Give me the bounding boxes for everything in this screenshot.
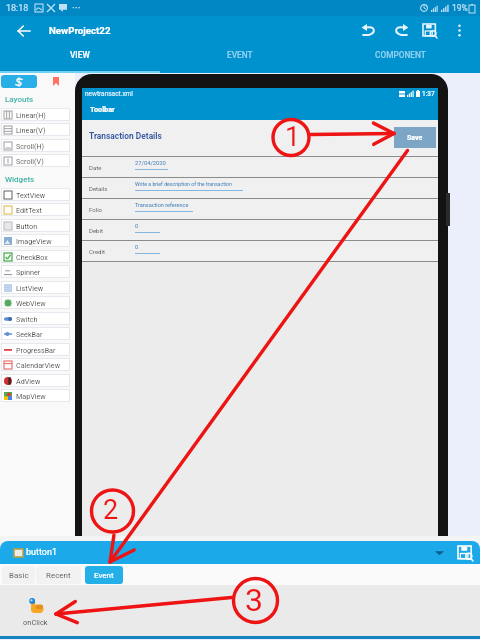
button[interactable]: Save	[414, 16, 446, 45]
button[interactable]: onClick	[15, 598, 56, 627]
staticText: Credit	[89, 248, 105, 255]
button[interactable]: Recent	[36, 566, 81, 584]
button[interactable]: Event	[85, 566, 123, 584]
button[interactable]: Button	[1, 219, 70, 232]
button[interactable]: Redo	[385, 16, 417, 45]
staticText: ListView	[16, 284, 44, 292]
staticText: NewProject22	[49, 25, 111, 36]
button[interactable]: SeekBar	[1, 327, 70, 340]
staticText: Scroll(H)	[16, 142, 45, 150]
button[interactable]: EditText	[1, 203, 70, 216]
staticText: Widgets	[5, 175, 35, 184]
button[interactable]: Save	[394, 127, 436, 148]
button[interactable]: Save project	[455, 543, 475, 563]
button[interactable]: button1	[0, 541, 480, 564]
button[interactable]: COMPONENT	[320, 45, 480, 73]
staticText: Save	[407, 134, 423, 142]
button[interactable]: CalendarView	[1, 358, 70, 371]
button[interactable]: ListView	[1, 281, 70, 294]
button[interactable]: Basic	[2, 566, 35, 584]
button[interactable]: Views palette	[1, 75, 37, 88]
button[interactable]: VIEW	[0, 45, 160, 73]
staticText: AdView	[16, 377, 41, 385]
staticText: EVENT	[227, 50, 253, 60]
button[interactable]: Scroll(H)	[1, 139, 70, 152]
staticText: Basic	[9, 571, 29, 580]
staticText: SeekBar	[16, 330, 43, 338]
staticText: Scroll(V)	[16, 157, 44, 165]
button[interactable]: Back	[7, 16, 40, 45]
staticText: 0	[135, 223, 139, 230]
staticText: ···	[72, 2, 81, 15]
staticText: 1	[285, 121, 301, 153]
staticText: Transaction Details	[89, 131, 162, 141]
staticText: Button	[16, 222, 38, 230]
button[interactable]: Spinner	[1, 265, 70, 278]
button[interactable]: MapView	[1, 389, 70, 402]
staticText: TextView	[16, 191, 46, 199]
button[interactable]: Components palette	[38, 75, 74, 88]
staticText: ProgressBar	[16, 346, 56, 354]
button[interactable]: Linear(V)	[1, 123, 70, 136]
staticText: Details	[89, 185, 108, 192]
staticText: EditText	[16, 206, 42, 214]
button[interactable]: ProgressBar	[1, 343, 70, 356]
button[interactable]: TextView	[1, 188, 70, 201]
button[interactable]: EVENT	[160, 45, 320, 73]
staticText: Linear(H)	[16, 111, 46, 119]
staticText: Write a brief description of the transac…	[135, 181, 232, 187]
staticText: newtransact.xml	[85, 90, 133, 98]
staticText: MapView	[16, 392, 46, 400]
button[interactable]: Linear(H)	[1, 108, 70, 121]
staticText: Layouts	[5, 95, 34, 104]
staticText: onClick	[23, 618, 48, 627]
button[interactable]: More options	[446, 17, 473, 44]
staticText: CalendarView	[16, 361, 61, 369]
staticText: WebView	[16, 299, 46, 307]
staticText: Recent	[46, 571, 71, 580]
staticText: CheckBox	[16, 253, 48, 261]
button[interactable]: WebView	[1, 296, 70, 309]
button[interactable]: Switch	[1, 312, 70, 325]
button[interactable]: Scroll(V)	[1, 154, 70, 167]
staticText: Date	[89, 164, 102, 171]
staticText: Switch	[16, 315, 38, 323]
button[interactable]: ImageView	[1, 234, 70, 247]
staticText: Transaction reference	[135, 202, 189, 208]
staticText: 2	[103, 494, 119, 526]
staticText: Linear(V)	[16, 126, 46, 134]
staticText: 19%	[452, 3, 468, 13]
staticText: VIEW	[70, 50, 90, 60]
staticText: 0	[135, 244, 139, 251]
button[interactable]: AdView	[1, 374, 70, 387]
staticText: Spinner	[16, 268, 41, 276]
staticText: 18:18	[6, 3, 29, 14]
button[interactable]: CheckBox	[1, 250, 70, 263]
button[interactable]: Undo	[352, 16, 384, 45]
staticText: 27/04/2020	[135, 160, 166, 167]
staticText: COMPONENT	[375, 50, 426, 60]
staticText: ImageView	[16, 237, 52, 245]
staticText: 3	[245, 581, 263, 619]
staticText: Debit	[89, 227, 103, 234]
staticText: button1	[26, 547, 57, 558]
staticText: Toolbar	[90, 105, 115, 114]
staticText: Folio	[89, 206, 103, 213]
staticText: Event	[94, 571, 114, 580]
staticText: 1:37	[422, 90, 435, 98]
